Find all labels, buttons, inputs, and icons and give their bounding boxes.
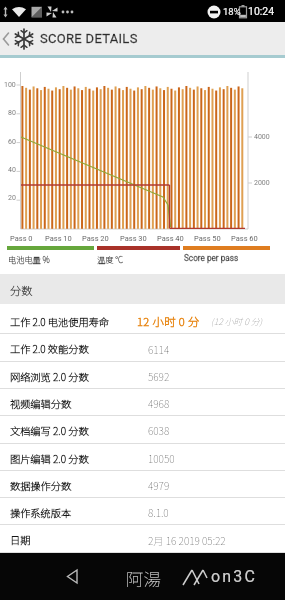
staticText: on3C bbox=[211, 567, 258, 586]
button[interactable] bbox=[0, 525, 285, 552]
staticText: 工作 2.0 效能分数 bbox=[10, 341, 89, 356]
button[interactable] bbox=[0, 334, 285, 361]
staticText: 网络浏览 2.0 分数 bbox=[10, 369, 89, 384]
staticText: 12 小时 0 分 bbox=[137, 313, 200, 329]
staticText: 工作 2.0 电池使用寿命 bbox=[10, 314, 109, 329]
staticText: 阿湯 bbox=[126, 566, 161, 591]
staticText: Score per pass bbox=[184, 253, 239, 263]
staticText: 分数 bbox=[10, 282, 33, 298]
staticText: 60 bbox=[8, 138, 16, 146]
staticText: 工作 2.0 效能分数 bbox=[10, 341, 89, 356]
staticText: Pass 40 bbox=[157, 234, 184, 243]
button[interactable] bbox=[0, 471, 285, 498]
staticText: 8.1.0 bbox=[148, 505, 169, 520]
staticText: 10050 bbox=[148, 451, 175, 466]
staticText: 操作系统版本 bbox=[10, 505, 72, 520]
staticText: 视频编辑分数 bbox=[10, 396, 72, 411]
staticText: 电池电量 % bbox=[8, 253, 50, 265]
button[interactable] bbox=[0, 389, 285, 416]
staticText: 6114 bbox=[148, 342, 170, 357]
staticText: Pass 20 bbox=[82, 234, 109, 243]
staticText: 温度 °C bbox=[97, 253, 123, 265]
staticText: 网络浏览 2.0 分数 bbox=[10, 369, 89, 384]
staticText: SCORE DETAILS bbox=[40, 31, 138, 46]
staticText: 温度 °C bbox=[97, 253, 123, 265]
staticText: 日期 bbox=[10, 532, 31, 547]
staticText: Pass 0 bbox=[10, 234, 33, 243]
staticText: 视频编辑分数 bbox=[10, 396, 72, 411]
staticText: 6038 bbox=[148, 423, 170, 438]
button[interactable] bbox=[0, 498, 285, 525]
button[interactable] bbox=[0, 22, 285, 55]
staticText: 20 bbox=[8, 194, 16, 202]
staticText: 分数 bbox=[10, 282, 33, 298]
staticText: 4968 bbox=[148, 396, 170, 411]
staticText: 文档编写 2.0 分数 bbox=[10, 423, 89, 438]
staticText: 工作 2.0 电池使用寿命 bbox=[10, 314, 109, 329]
staticText: 2月 16 2019 05:22 bbox=[148, 533, 226, 548]
button[interactable] bbox=[0, 443, 285, 470]
button[interactable] bbox=[0, 307, 285, 334]
staticText: 12 小时 0 分 bbox=[137, 313, 200, 329]
button[interactable] bbox=[0, 361, 285, 388]
staticText: 100 bbox=[4, 81, 16, 89]
staticText: 数据操作分数 bbox=[10, 478, 72, 493]
staticText: 操作系统版本 bbox=[10, 505, 72, 520]
staticText: Pass 60 bbox=[231, 234, 258, 243]
button[interactable] bbox=[0, 416, 285, 443]
staticText: Pass 50 bbox=[194, 234, 221, 243]
staticText: 5692 bbox=[148, 369, 170, 384]
staticText: 电池电量 % bbox=[8, 253, 50, 265]
button[interactable] bbox=[57, 560, 97, 593]
staticText: 4979 bbox=[148, 478, 170, 493]
staticText: 4000 bbox=[254, 133, 270, 141]
staticText: 数据操作分数 bbox=[10, 478, 72, 493]
staticText: 图片编辑 2.0 分数 bbox=[10, 451, 89, 466]
staticText: Pass 30 bbox=[120, 234, 147, 243]
staticText: SCORE DETAILS bbox=[40, 31, 138, 46]
staticText: Score per pass bbox=[184, 253, 239, 263]
staticText: (12 小时 0 分) bbox=[211, 315, 263, 328]
staticText: Pass 10 bbox=[45, 234, 72, 243]
staticText: 文档编写 2.0 分数 bbox=[10, 423, 89, 438]
staticText: 10:24 bbox=[248, 5, 275, 17]
staticText: 40 bbox=[8, 166, 16, 174]
staticText: 2000 bbox=[254, 179, 270, 187]
staticText: 图片编辑 2.0 分数 bbox=[10, 451, 89, 466]
staticText: 80 bbox=[8, 109, 16, 117]
staticText: 18% bbox=[223, 6, 241, 17]
staticText: 日期 bbox=[10, 532, 31, 547]
